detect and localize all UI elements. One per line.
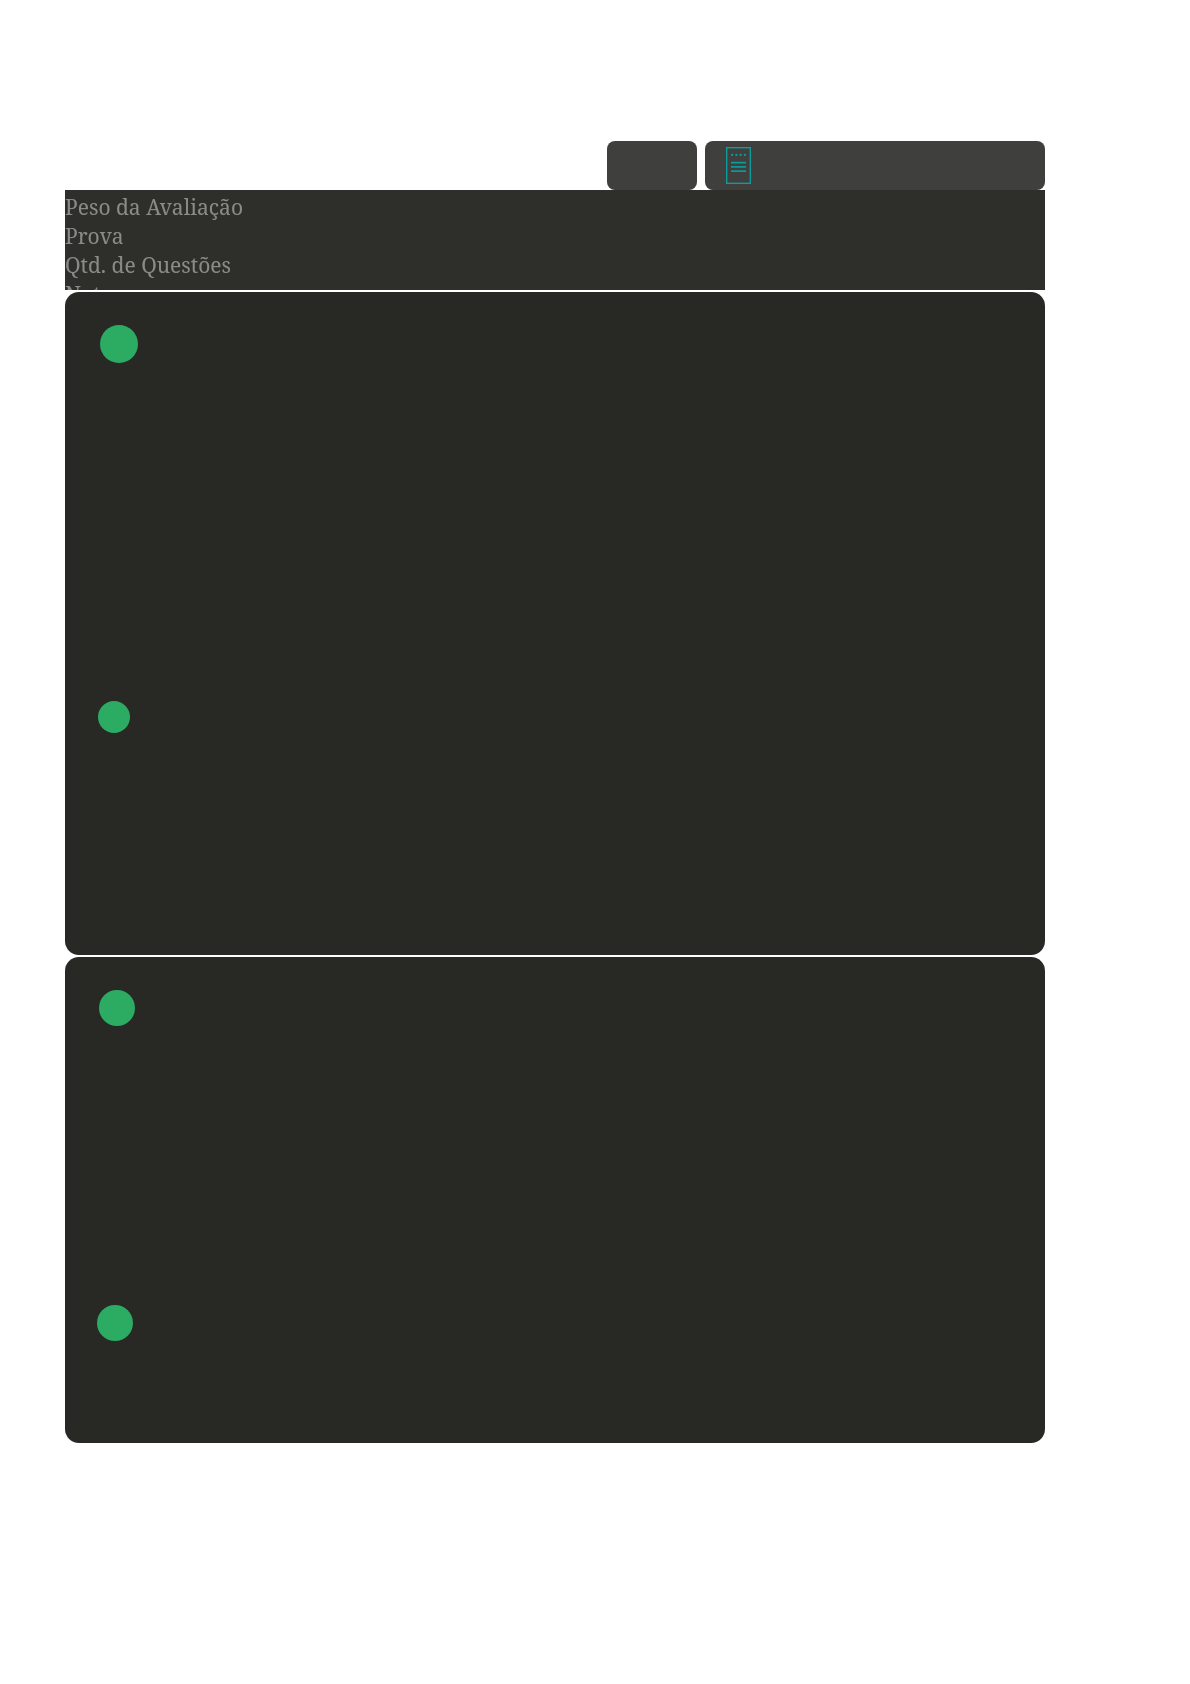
button[interactable] [65, 292, 1045, 955]
staticText: Nota [65, 280, 113, 290]
button[interactable]: Filtro [607, 141, 697, 190]
button[interactable]: Avaliação [705, 141, 1045, 190]
staticText: Peso da Avaliação [65, 193, 243, 222]
staticText: Prova [65, 222, 124, 251]
button[interactable] [65, 957, 1045, 1443]
staticText: Qtd. de Questões [65, 251, 232, 280]
